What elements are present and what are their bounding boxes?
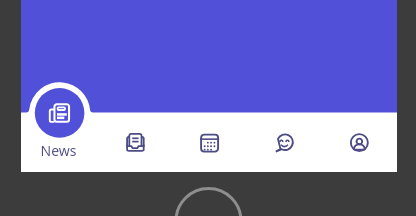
button[interactable]: Drafts bbox=[96, 113, 171, 173]
button[interactable]: News bbox=[21, 82, 96, 172]
staticText: News bbox=[21, 141, 96, 160]
button[interactable]: Account bbox=[322, 113, 397, 173]
button[interactable]: Mood bbox=[247, 113, 322, 173]
button[interactable]: Calendar bbox=[171, 113, 246, 173]
